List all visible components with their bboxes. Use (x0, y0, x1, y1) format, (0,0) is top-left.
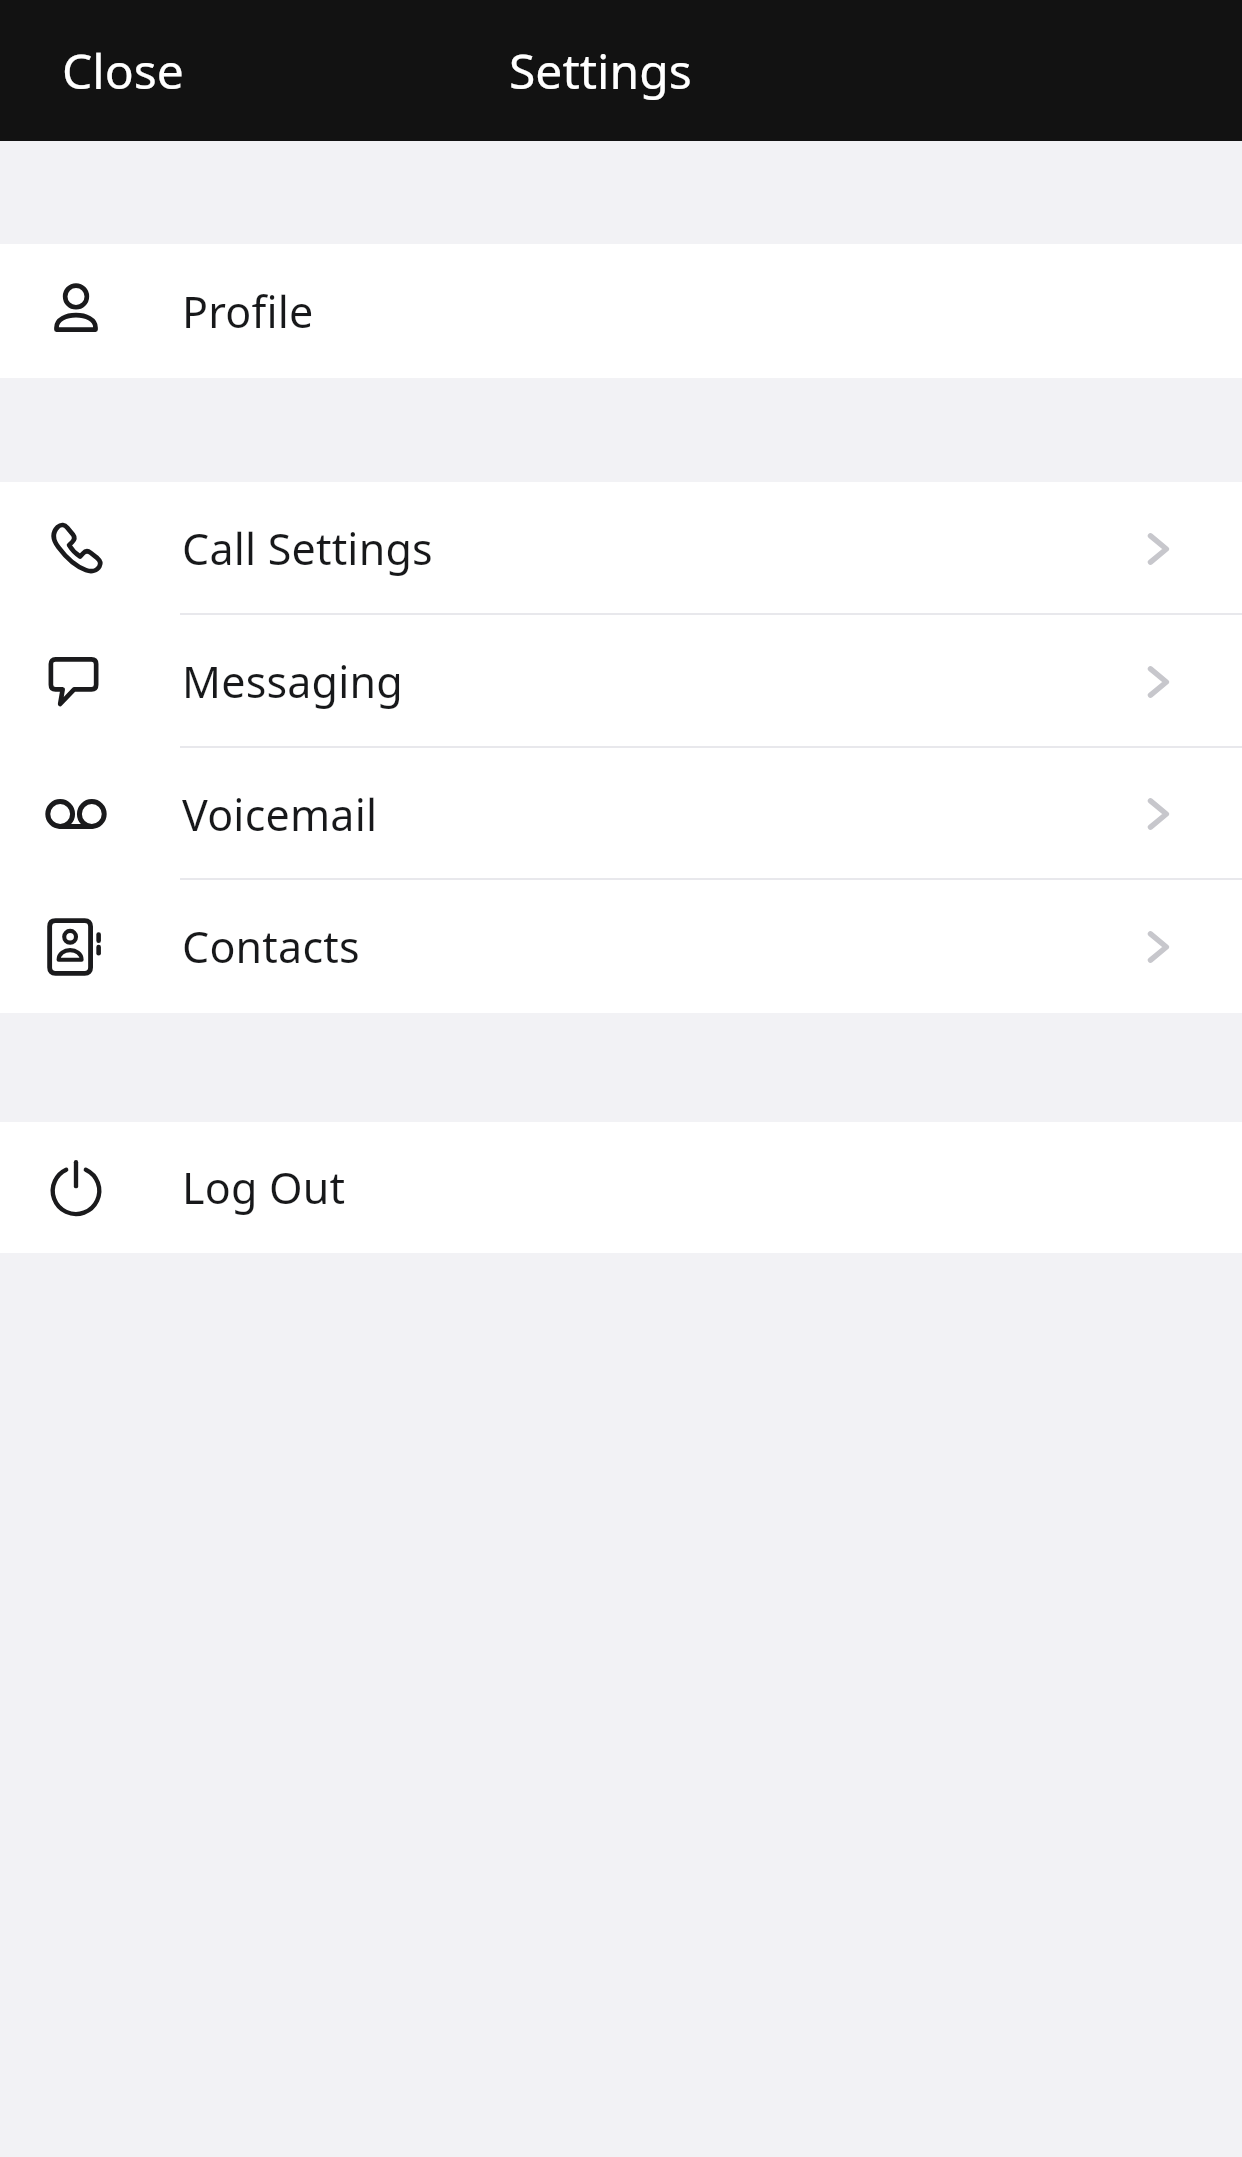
button[interactable]: Voicemail (0, 748, 1242, 880)
other: Open Contacts (1136, 925, 1180, 969)
staticText: Messaging (182, 652, 403, 711)
button[interactable]: Profile (0, 244, 1242, 378)
staticText: Call Settings (182, 519, 433, 578)
button[interactable]: Log Out (0, 1122, 1242, 1253)
staticText: Log Out (182, 1158, 346, 1217)
button[interactable]: Messaging (0, 615, 1242, 748)
staticText: Contacts (182, 917, 360, 976)
other: Open Voicemail (1136, 792, 1180, 836)
staticText: Settings (509, 38, 692, 103)
button[interactable]: Close (0, 0, 224, 141)
staticText: Voicemail (182, 785, 378, 844)
staticText: Close (62, 38, 184, 103)
button[interactable]: Call Settings (0, 482, 1242, 615)
button[interactable]: Contacts (0, 880, 1242, 1013)
other: Open Call Settings (1136, 527, 1180, 571)
other: Open Messaging (1136, 660, 1180, 704)
staticText: Profile (182, 282, 314, 341)
